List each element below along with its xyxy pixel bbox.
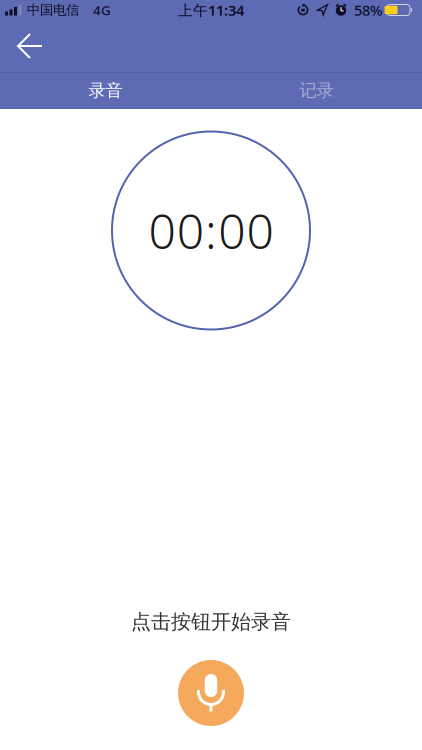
staticText: 记录 bbox=[299, 80, 333, 101]
staticText: 上午11:34 bbox=[178, 0, 244, 20]
staticText: 58% bbox=[354, 0, 382, 20]
staticText: 录音 bbox=[88, 80, 122, 101]
button[interactable]: 记录 bbox=[211, 73, 422, 108]
button[interactable]: 录音 bbox=[0, 73, 211, 108]
button[interactable] bbox=[178, 660, 244, 726]
staticText: 点击按钮开始录音 bbox=[131, 609, 291, 634]
staticText: 中国电信 bbox=[27, 2, 79, 18]
staticText: 4G bbox=[93, 1, 111, 19]
staticText: 00:00 bbox=[148, 199, 274, 262]
button[interactable] bbox=[0, 34, 42, 58]
